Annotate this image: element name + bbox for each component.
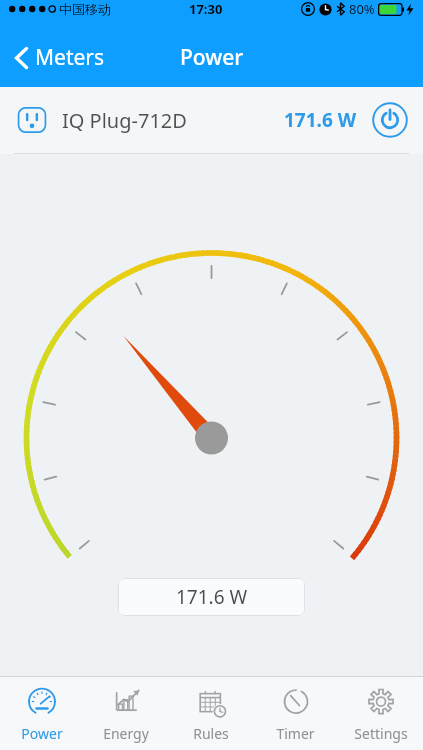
staticText: Power <box>21 724 63 743</box>
button[interactable]: Meters <box>10 37 109 78</box>
staticText: 中国移动 <box>59 1 111 17</box>
button[interactable]: Power <box>0 677 84 750</box>
staticText: Power <box>180 43 244 72</box>
button[interactable]: Energy <box>84 677 168 750</box>
button[interactable]: 171.6 W <box>118 578 305 616</box>
button[interactable]: Power toggle <box>371 101 409 139</box>
button[interactable]: IQ Plug-712D <box>0 87 423 153</box>
button[interactable]: Timer <box>253 677 338 750</box>
staticText: 171.6 W <box>176 584 248 610</box>
staticText: Settings <box>354 724 408 743</box>
button[interactable]: Settings <box>338 677 423 750</box>
staticText: Rules <box>193 724 229 743</box>
staticText: Meters <box>35 43 105 72</box>
staticText: IQ Plug-712D <box>62 107 187 134</box>
button[interactable]: Rules <box>168 677 253 750</box>
staticText: Timer <box>276 724 315 743</box>
staticText: Energy <box>103 724 149 743</box>
staticText: 80% <box>349 0 375 18</box>
staticText: 17:30 <box>189 0 223 18</box>
staticText: 171.6 W <box>284 107 357 133</box>
